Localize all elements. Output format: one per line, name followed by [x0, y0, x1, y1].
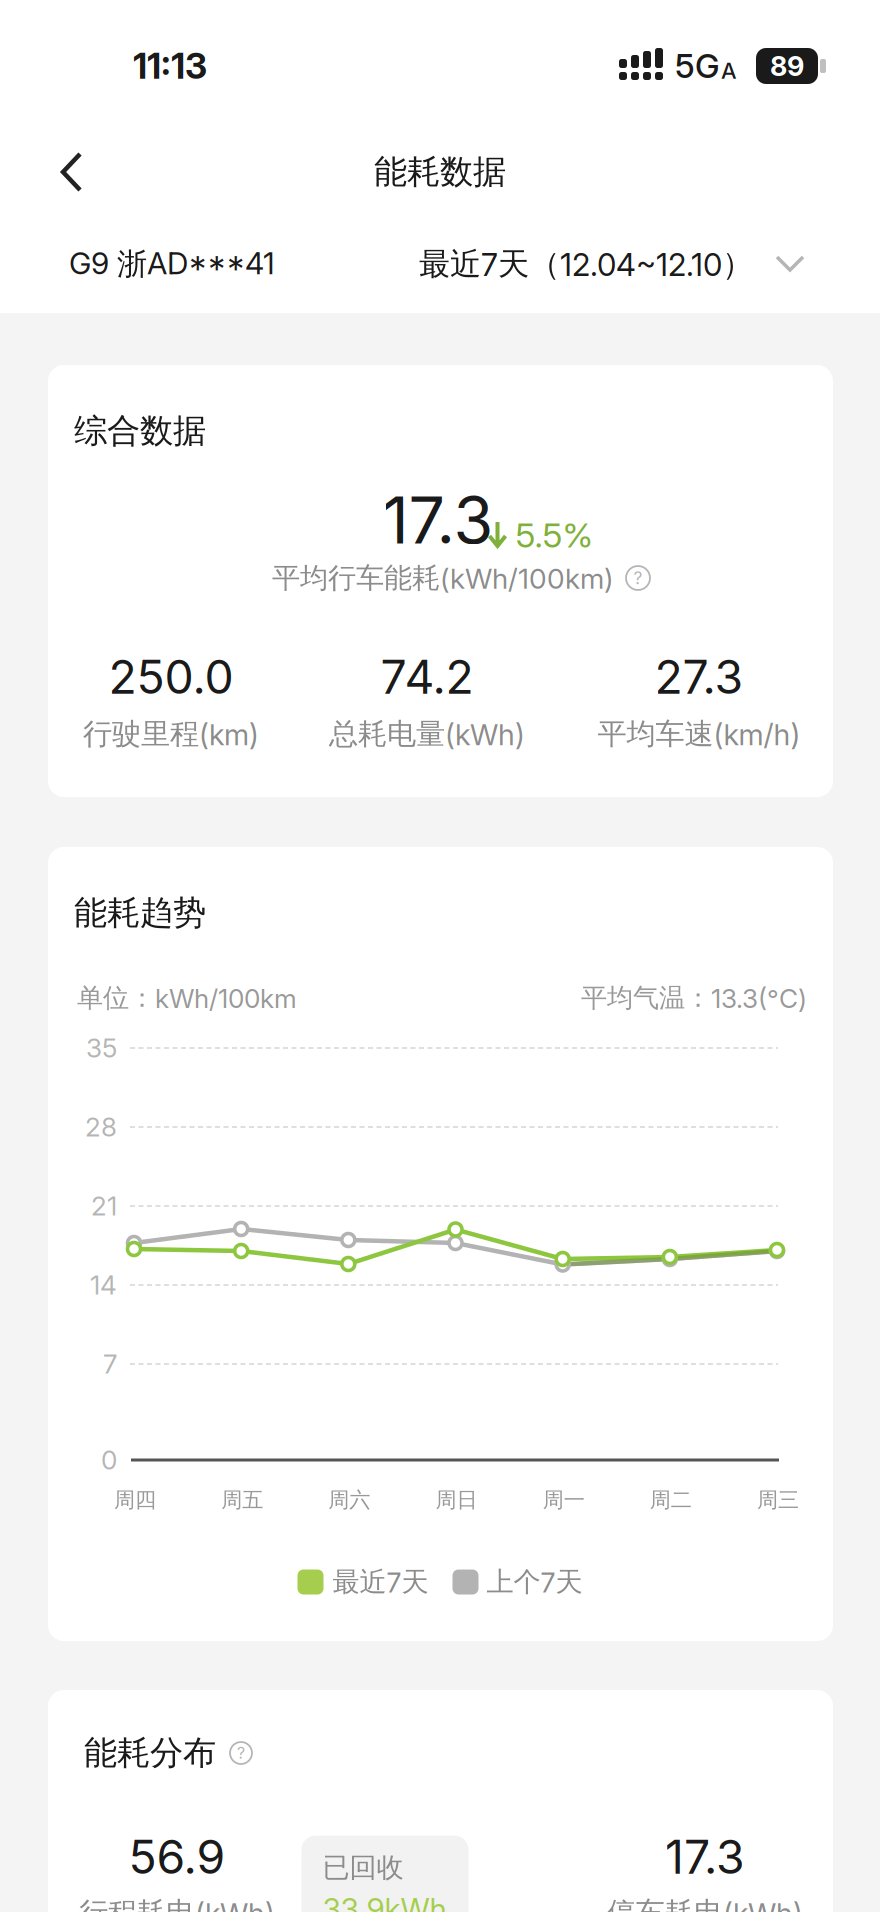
staticText: 周二: [650, 1487, 692, 1513]
staticText: 周日: [435, 1487, 477, 1513]
staticText: 已回收: [322, 1851, 403, 1885]
staticText: 行驶里程(km): [83, 716, 259, 752]
staticText: 能耗趋势: [74, 892, 206, 934]
staticText: 周四: [114, 1487, 156, 1513]
staticText: 250.0: [108, 649, 233, 705]
staticText: 28: [85, 1111, 117, 1143]
staticText: 89: [770, 50, 804, 82]
staticText: 能耗分布: [84, 1732, 216, 1774]
staticText: 11:13: [133, 45, 207, 87]
staticText: 停车耗电(kWh): [607, 1895, 803, 1912]
staticText: 14: [90, 1269, 117, 1301]
staticText: 21: [91, 1190, 117, 1222]
staticText: 单位：kWh/100km: [77, 981, 297, 1014]
staticText: 17.3: [382, 481, 493, 559]
staticText: 35: [86, 1032, 117, 1064]
staticText: 74.2: [380, 649, 473, 705]
staticText: A: [721, 57, 737, 84]
staticText: 27.3: [654, 649, 743, 705]
staticText: 7: [103, 1348, 117, 1380]
button[interactable]: 返回: [28, 128, 116, 216]
staticText: 总耗电量(kWh): [329, 716, 525, 752]
staticText: 0: [101, 1444, 117, 1476]
button[interactable]: 最近7天（12.04~12.10）: [419, 244, 805, 284]
staticText: 上个7天: [486, 1565, 582, 1599]
staticText: 平均车速(km/h): [597, 716, 800, 752]
staticText: 5G: [675, 46, 720, 86]
staticText: 33.9kWh: [322, 1891, 446, 1912]
staticText: 平均行车能耗(kWh/100km): [272, 560, 614, 596]
staticText: 周一: [543, 1487, 585, 1513]
staticText: 周五: [221, 1487, 263, 1513]
staticText: 行程耗电(kWh): [79, 1895, 275, 1912]
staticText: 周三: [757, 1487, 799, 1513]
staticText: 17.3: [665, 1829, 745, 1885]
staticText: 56.9: [128, 1829, 225, 1885]
staticText: 最近7天（12.04~12.10）: [419, 244, 753, 284]
staticText: 5.5%: [515, 514, 593, 556]
staticText: 能耗数据: [374, 151, 506, 193]
staticText: ?: [633, 567, 642, 588]
staticText: 最近7天: [332, 1565, 428, 1599]
staticText: 周六: [328, 1487, 370, 1513]
staticText: 综合数据: [74, 410, 206, 452]
staticText: G9 浙AD***41: [69, 245, 275, 283]
staticText: 平均气温：13.3(°C): [581, 981, 807, 1014]
staticText: ?: [237, 1743, 245, 1763]
